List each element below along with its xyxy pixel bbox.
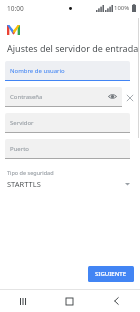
staticText: Servidor xyxy=(10,119,34,127)
staticText: Puerto xyxy=(10,145,29,153)
staticText: Ajustes del servidor de entrada xyxy=(7,42,139,54)
staticText: Nombre de usuario xyxy=(10,67,65,75)
staticText: 10:00 xyxy=(7,4,24,13)
staticText: STARTTLS xyxy=(7,179,125,189)
staticText: Tipo de seguridad xyxy=(7,169,54,176)
button[interactable]: Tipo de seguridad xyxy=(7,169,130,189)
staticText: 100% xyxy=(114,4,130,12)
button[interactable]: Atrás xyxy=(93,290,140,312)
button[interactable]: Servidor xyxy=(5,113,130,133)
button[interactable]: Puerto xyxy=(5,139,130,159)
button[interactable]: Borrar xyxy=(124,92,135,103)
button[interactable]: SIGUIENTE xyxy=(88,266,134,282)
button[interactable]: Nombre de usuario xyxy=(5,61,130,81)
button[interactable]: Recientes xyxy=(0,290,46,312)
button[interactable]: Inicio xyxy=(46,290,93,312)
button[interactable]: Mostrar contraseña xyxy=(107,91,118,102)
button[interactable]: Contraseña xyxy=(5,87,122,107)
staticText: SIGUIENTE xyxy=(95,270,127,278)
staticText: Contraseña xyxy=(10,93,43,101)
